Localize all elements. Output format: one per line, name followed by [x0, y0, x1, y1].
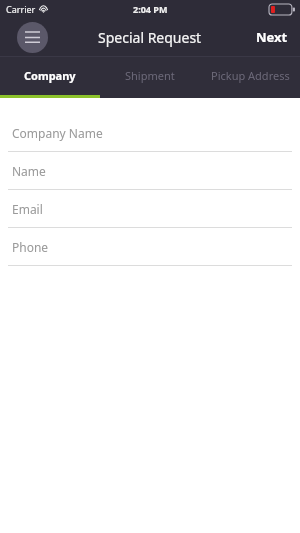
button[interactable]: Menu	[17, 22, 48, 53]
staticText: Phone	[12, 239, 49, 255]
staticText: Company Name	[12, 125, 103, 141]
button[interactable]: Company Name	[0, 114, 300, 152]
staticText: Pickup Address	[211, 68, 290, 83]
staticText: Company	[24, 68, 76, 83]
staticText: Name	[12, 163, 46, 179]
staticText: Email	[12, 201, 43, 217]
staticText: Shipment	[125, 68, 175, 83]
button[interactable]: Email	[0, 190, 300, 228]
button[interactable]: Phone	[0, 228, 300, 266]
staticText: Next	[256, 28, 288, 46]
button[interactable]: Name	[0, 152, 300, 190]
staticText: 2:04 PM	[133, 3, 168, 15]
button[interactable]: Next	[244, 18, 300, 56]
staticText: Carrier	[6, 3, 36, 15]
button[interactable]: Company	[0, 57, 100, 98]
button[interactable]: Pickup Address	[200, 57, 300, 98]
staticText: Special Request	[98, 28, 202, 47]
button[interactable]: Shipment	[100, 57, 200, 98]
